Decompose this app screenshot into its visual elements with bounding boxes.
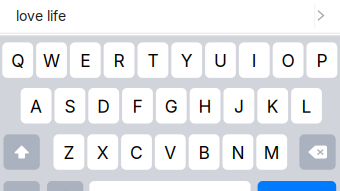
button[interactable]: Q	[2, 42, 33, 78]
button[interactable]: F	[122, 88, 153, 123]
button[interactable]: X	[87, 134, 118, 170]
button[interactable]: T	[137, 42, 168, 78]
staticText: W	[43, 50, 60, 71]
button[interactable]: 123	[3, 181, 40, 191]
button[interactable]: L	[291, 88, 322, 123]
button[interactable]: B	[189, 134, 219, 170]
staticText: Y	[181, 50, 193, 71]
button[interactable]: E	[70, 42, 101, 78]
staticText: U	[214, 50, 227, 71]
button[interactable]: love life	[16, 0, 308, 32]
button[interactable]: O	[273, 42, 303, 78]
button[interactable]: V	[155, 134, 186, 170]
button[interactable]: Y	[171, 42, 202, 78]
staticText: N	[231, 142, 244, 163]
staticText: B	[199, 142, 210, 163]
staticText: L	[301, 96, 311, 117]
button[interactable]: H	[190, 88, 220, 123]
button[interactable]: return	[258, 181, 336, 191]
button[interactable]: W	[36, 42, 67, 78]
staticText: M	[264, 142, 280, 163]
button[interactable]: Show more	[311, 4, 330, 27]
button[interactable]: N	[222, 134, 253, 170]
staticText: E	[80, 50, 90, 71]
staticText: Z	[63, 142, 74, 163]
button[interactable]: C	[121, 134, 152, 170]
staticText: Q	[11, 50, 24, 71]
button[interactable]: space	[89, 181, 251, 191]
button[interactable]: M	[256, 134, 287, 170]
staticText: F	[132, 96, 142, 117]
button[interactable]: S	[54, 88, 85, 123]
button[interactable]: Next keyboard	[47, 181, 83, 191]
button[interactable]: J	[223, 88, 254, 123]
button[interactable]: R	[104, 42, 134, 78]
button[interactable]: A	[21, 88, 51, 123]
button[interactable]: K	[257, 88, 288, 123]
staticText: D	[97, 96, 110, 117]
button[interactable]: I	[239, 42, 270, 78]
staticText: S	[64, 96, 75, 117]
button[interactable]: U	[205, 42, 236, 78]
staticText: C	[130, 142, 143, 163]
staticText: G	[165, 96, 178, 117]
button[interactable]: Delete	[299, 134, 336, 170]
staticText: V	[164, 142, 176, 163]
staticText: H	[199, 96, 212, 117]
staticText: X	[97, 142, 109, 163]
staticText: K	[267, 96, 279, 117]
staticText: R	[114, 50, 125, 71]
staticText: O	[282, 50, 295, 71]
staticText: A	[30, 96, 42, 117]
staticText: P	[316, 50, 327, 71]
staticText: love life	[16, 7, 66, 24]
staticText: I	[252, 50, 257, 71]
button[interactable]: P	[306, 42, 337, 78]
button[interactable]: Shift	[3, 134, 40, 170]
staticText: J	[234, 96, 244, 117]
button[interactable]: G	[156, 88, 187, 123]
staticText: T	[147, 50, 158, 71]
button[interactable]: D	[88, 88, 119, 123]
button[interactable]: Z	[53, 134, 84, 170]
